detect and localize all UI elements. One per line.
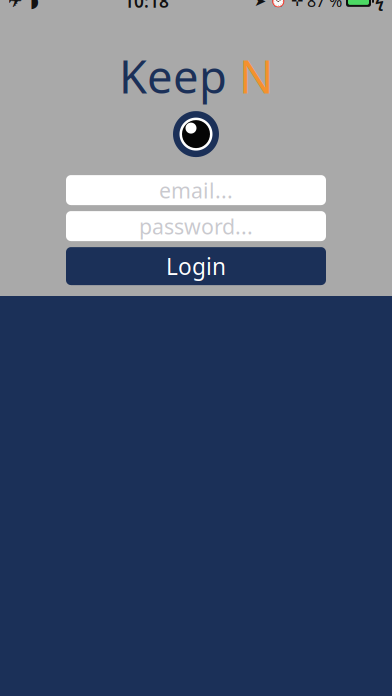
staticText: ✛ — [291, 0, 303, 9]
staticText: Keep — [119, 46, 227, 106]
staticText: Login — [166, 251, 226, 281]
staticText: ⏰ — [270, 0, 287, 8]
staticText: ◗ — [30, 0, 39, 11]
staticText: email... — [159, 176, 233, 204]
button[interactable]: Login — [66, 247, 326, 285]
staticText: N — [239, 46, 273, 106]
staticText: ➤ — [254, 0, 266, 9]
button[interactable]: password... — [66, 211, 326, 241]
staticText: ϟ — [375, 0, 384, 11]
staticText: ✈ — [8, 0, 23, 11]
staticText: 10:18 — [124, 0, 169, 12]
staticText: 87 % — [307, 0, 342, 11]
button[interactable]: email... — [66, 175, 326, 205]
staticText: password... — [139, 212, 253, 240]
